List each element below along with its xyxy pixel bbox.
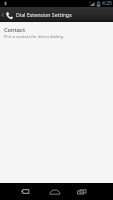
button[interactable]: Home: [43, 183, 67, 200]
staticText: 4:25: [102, 0, 112, 7]
button[interactable]: Recent apps: [70, 183, 94, 200]
staticText: Dial Extension Settings: [16, 11, 72, 18]
button[interactable]: Back: [14, 183, 38, 200]
button[interactable]: Contact: [0, 22, 113, 44]
button[interactable]: Navigate up: [0, 7, 14, 22]
staticText: Contact: [4, 26, 26, 34]
staticText: Pick a contact for direct dialing: [4, 34, 64, 40]
